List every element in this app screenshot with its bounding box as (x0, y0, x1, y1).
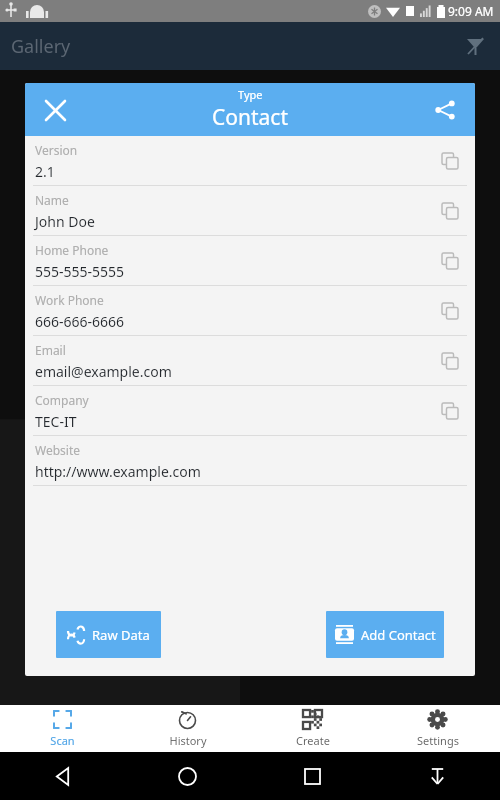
button[interactable]: Work Phone (25, 286, 475, 336)
button[interactable]: Recents (250, 752, 375, 800)
staticText: Create (296, 733, 330, 748)
staticText: Email (35, 342, 66, 358)
button[interactable]: Home Phone (25, 236, 475, 286)
button[interactable]: Back (0, 752, 125, 800)
staticText: email@example.com (35, 362, 172, 381)
staticText: History (169, 733, 207, 748)
button[interactable]: Filter off (460, 31, 490, 61)
button[interactable]: Copy Version (433, 144, 467, 178)
button[interactable]: Copy Home Phone (433, 244, 467, 278)
staticText: John Doe (35, 212, 95, 231)
staticText: Gallery (11, 34, 71, 59)
staticText: 555-555-5555 (35, 262, 125, 281)
button[interactable]: Copy Work Phone (433, 294, 467, 328)
button[interactable]: Website (25, 436, 475, 486)
button[interactable]: Close (35, 90, 75, 130)
button[interactable]: Company (25, 386, 475, 436)
button[interactable]: Copy Company (433, 394, 467, 428)
button[interactable]: Settings (375, 705, 500, 752)
staticText: 9:09 AM (448, 3, 494, 19)
button[interactable]: History (125, 705, 250, 752)
button[interactable]: Email (25, 336, 475, 386)
staticText: Scan (50, 733, 75, 748)
staticText: 666-666-6666 (35, 312, 125, 331)
staticText: http://www.example.com (35, 462, 201, 481)
staticText: Add Contact (361, 626, 436, 644)
button[interactable]: Create (250, 705, 375, 752)
button[interactable]: Hide keyboard (375, 752, 500, 800)
staticText: Home Phone (35, 242, 109, 258)
button[interactable]: Scan (0, 705, 125, 752)
staticText: Work Phone (35, 292, 104, 308)
button[interactable]: Home (125, 752, 250, 800)
staticText: Contact (212, 103, 288, 132)
button[interactable]: Share (425, 90, 465, 130)
staticText: Version (35, 142, 78, 158)
staticText: Company (35, 392, 89, 408)
button[interactable]: Raw Data (56, 611, 161, 658)
button[interactable]: Copy Name (433, 194, 467, 228)
staticText: Raw Data (92, 626, 150, 644)
staticText: Name (35, 192, 69, 208)
staticText: Website (35, 442, 81, 458)
button[interactable]: Add Contact (326, 611, 444, 658)
staticText: 2.1 (35, 162, 55, 181)
button[interactable]: Copy Email (433, 344, 467, 378)
staticText: TEC-IT (35, 412, 77, 431)
button[interactable]: Version (25, 136, 475, 186)
staticText: Settings (417, 733, 459, 748)
button[interactable]: Name (25, 186, 475, 236)
staticText: Type (238, 87, 263, 102)
